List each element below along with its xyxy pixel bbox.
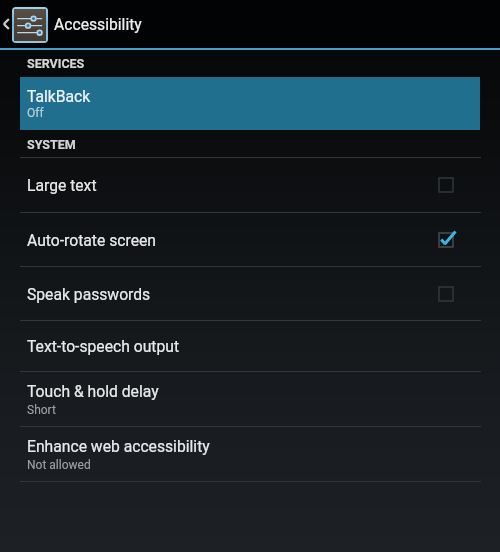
staticText: Speak passwords: [27, 285, 151, 303]
staticText: SERVICES: [27, 56, 85, 71]
other: Checked: [436, 230, 456, 250]
button[interactable]: Enhance web accessibility: [0, 427, 500, 481]
staticText: Off: [27, 106, 44, 120]
staticText: Short: [27, 403, 56, 417]
button[interactable]: TalkBack: [20, 77, 480, 130]
button[interactable]: Large text: [0, 158, 500, 212]
button[interactable]: Speak passwords: [0, 267, 500, 320]
staticText: TalkBack: [27, 87, 91, 105]
button[interactable]: Navigate up: [0, 0, 48, 48]
button[interactable]: Auto-rotate screen: [0, 213, 500, 266]
staticText: Large text: [27, 176, 97, 194]
staticText: Accessibility: [54, 15, 142, 33]
button[interactable]: Touch & hold delay: [0, 372, 500, 426]
button[interactable]: Text-to-speech output: [0, 321, 500, 371]
staticText: Not allowed: [27, 458, 91, 472]
other: Unchecked: [436, 175, 456, 195]
staticText: Auto-rotate screen: [27, 231, 156, 249]
staticText: Touch & hold delay: [27, 382, 159, 400]
other: Unchecked: [436, 284, 456, 304]
staticText: SYSTEM: [27, 137, 76, 152]
staticText: Text-to-speech output: [27, 337, 180, 355]
staticText: Enhance web accessibility: [27, 437, 210, 455]
